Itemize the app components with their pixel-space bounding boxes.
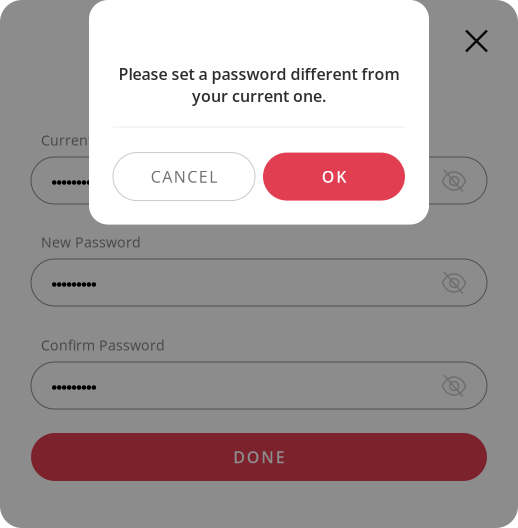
staticText: your current one. [192,85,326,107]
staticText: New Password [41,232,141,252]
button[interactable]: Close [453,24,487,58]
button[interactable]: CANCEL [113,153,255,201]
staticText: DONE [233,446,285,468]
button[interactable] [31,362,487,409]
staticText: OK [322,166,346,187]
button[interactable] [31,259,487,306]
button[interactable]: OK [263,153,405,201]
staticText: Current Password [41,130,163,150]
button[interactable]: DONE [31,433,487,481]
button[interactable] [31,157,487,204]
staticText: Please set a password different from [118,63,399,85]
staticText: CANCEL [151,166,217,187]
staticText: Confirm Password [41,335,165,355]
